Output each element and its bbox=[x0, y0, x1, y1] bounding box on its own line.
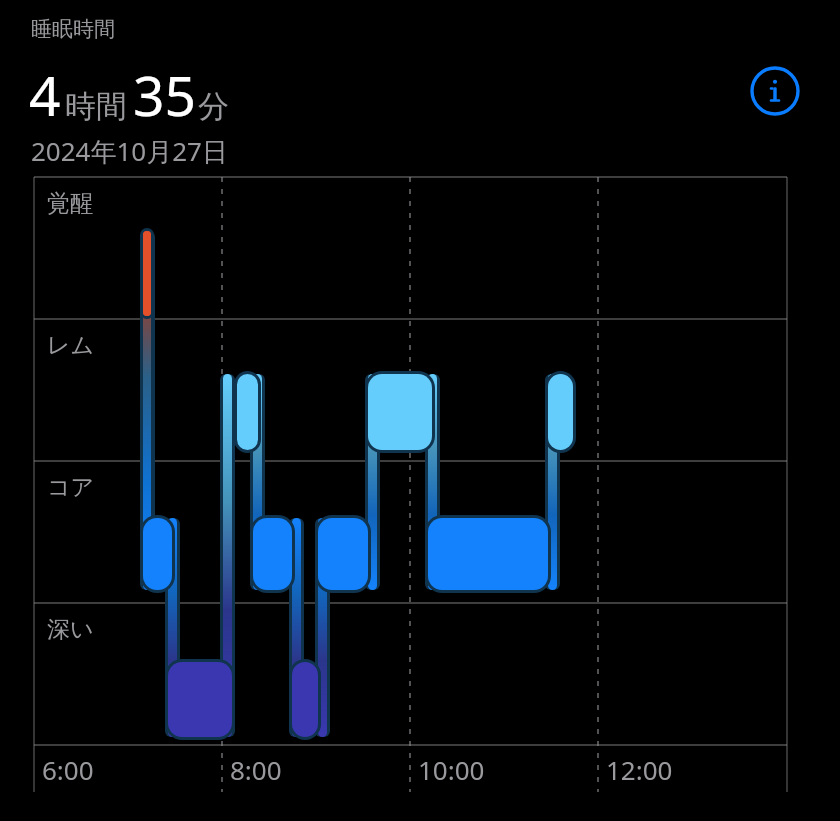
staticText: 深い bbox=[47, 615, 94, 644]
button[interactable]: 情報 bbox=[749, 65, 801, 117]
staticText: 6:00 bbox=[42, 752, 94, 787]
staticText: 分 bbox=[198, 87, 229, 126]
staticText: 8:00 bbox=[230, 752, 282, 787]
staticText: コア bbox=[47, 473, 95, 502]
staticText: 睡眠時間 bbox=[31, 16, 115, 42]
staticText: 12:00 bbox=[606, 752, 673, 787]
staticText: 時間 bbox=[65, 87, 127, 126]
staticText: 10:00 bbox=[418, 752, 485, 787]
staticText: 覚醒 bbox=[47, 189, 93, 218]
staticText: 4 bbox=[29, 57, 61, 132]
staticText: 35 bbox=[133, 57, 196, 132]
staticText: レム bbox=[47, 331, 95, 360]
staticText: 2024年10月27日 bbox=[31, 133, 228, 169]
